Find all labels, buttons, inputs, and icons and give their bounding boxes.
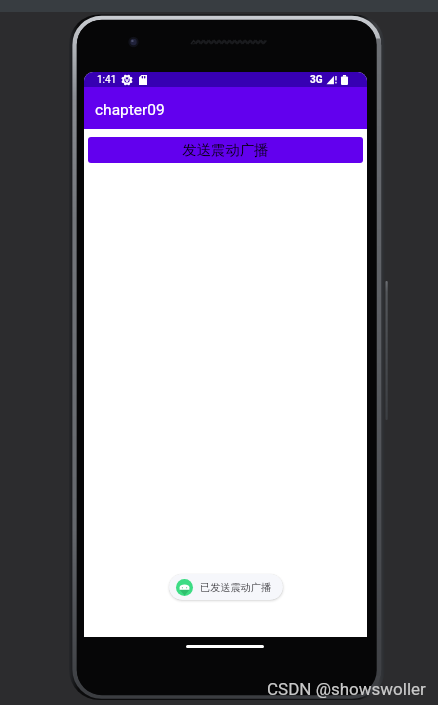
staticText: chapter09: [95, 101, 165, 119]
staticText: 3G: [310, 74, 323, 86]
staticText: 已发送震动广播: [200, 581, 272, 594]
button[interactable]: 发送震动广播: [88, 137, 363, 163]
other: USB debugging: [122, 75, 132, 85]
staticText: CSDN @showswoller: [267, 679, 426, 699]
other: Android: [176, 579, 193, 596]
button[interactable]: chapter09: [84, 87, 367, 129]
staticText: 发送震动广播: [182, 141, 269, 159]
other: Battery: [341, 75, 348, 85]
other: Storage: [139, 75, 147, 85]
other: Mobile signal: [326, 75, 337, 85]
staticText: 1:41: [97, 74, 117, 86]
